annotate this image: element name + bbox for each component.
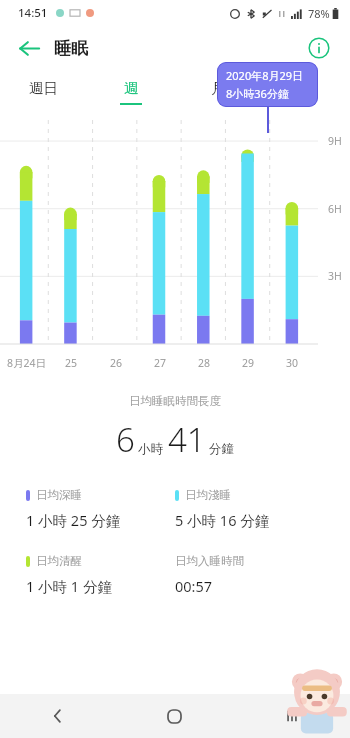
button[interactable]: 2020年8月29日 <box>226 68 309 101</box>
staticText: 14:51 <box>18 5 48 21</box>
staticText: 8小時36分鐘 <box>226 86 289 101</box>
button[interactable]: 日均清醒 <box>26 554 175 596</box>
button[interactable]: 月 <box>174 70 262 114</box>
staticText: 3H <box>328 269 342 283</box>
staticText: 2020年8月29日 <box>226 68 304 83</box>
staticText: 日均入睡時間 <box>175 554 244 568</box>
staticText: 月 <box>211 79 226 97</box>
button[interactable]: Information <box>302 31 336 65</box>
staticText: 9H <box>328 134 342 148</box>
button[interactable]: 週 <box>87 70 174 114</box>
staticText: 小時 <box>138 441 163 457</box>
staticText: 30 <box>286 356 299 370</box>
button[interactable]: Home <box>116 694 233 738</box>
staticText: 26 <box>110 356 123 370</box>
staticText: 週日 <box>29 79 58 97</box>
staticText: 29 <box>242 356 255 370</box>
button[interactable]: 日均深睡 <box>26 488 175 530</box>
button[interactable]: 週日 <box>0 70 87 114</box>
staticText: 25 <box>65 356 78 370</box>
staticText: 年 <box>299 79 314 97</box>
staticText: 日均淺睡 <box>185 488 231 502</box>
staticText: 日均深睡 <box>36 488 82 502</box>
staticText: 睡眠 <box>54 38 88 59</box>
staticText: 6 <box>116 417 135 462</box>
staticText: 1 小時 1 分鐘 <box>26 576 112 596</box>
button[interactable]: 日均入睡時間 <box>175 554 324 596</box>
staticText: 5 小時 16 分鐘 <box>175 510 270 530</box>
staticText: 日均睡眠時間長度 <box>129 394 221 408</box>
staticText: 28 <box>198 356 211 370</box>
staticText: 1 小時 25 分鐘 <box>26 510 121 530</box>
staticText: 00:57 <box>175 576 213 596</box>
staticText: 分鐘 <box>209 441 234 457</box>
staticText: 27 <box>154 356 167 370</box>
button[interactable]: Back <box>10 29 48 67</box>
staticText: 41 <box>168 417 206 462</box>
staticText: 週 <box>124 79 139 97</box>
staticText: 8月24日 <box>7 356 47 370</box>
staticText: 6H <box>328 202 342 216</box>
staticText: 日均清醒 <box>36 554 82 568</box>
button[interactable]: 日均淺睡 <box>175 488 324 530</box>
button[interactable]: Recent apps <box>233 694 350 738</box>
staticText: 78% <box>308 6 330 21</box>
button[interactable]: Back <box>0 694 116 738</box>
button[interactable]: 年 <box>262 70 350 114</box>
